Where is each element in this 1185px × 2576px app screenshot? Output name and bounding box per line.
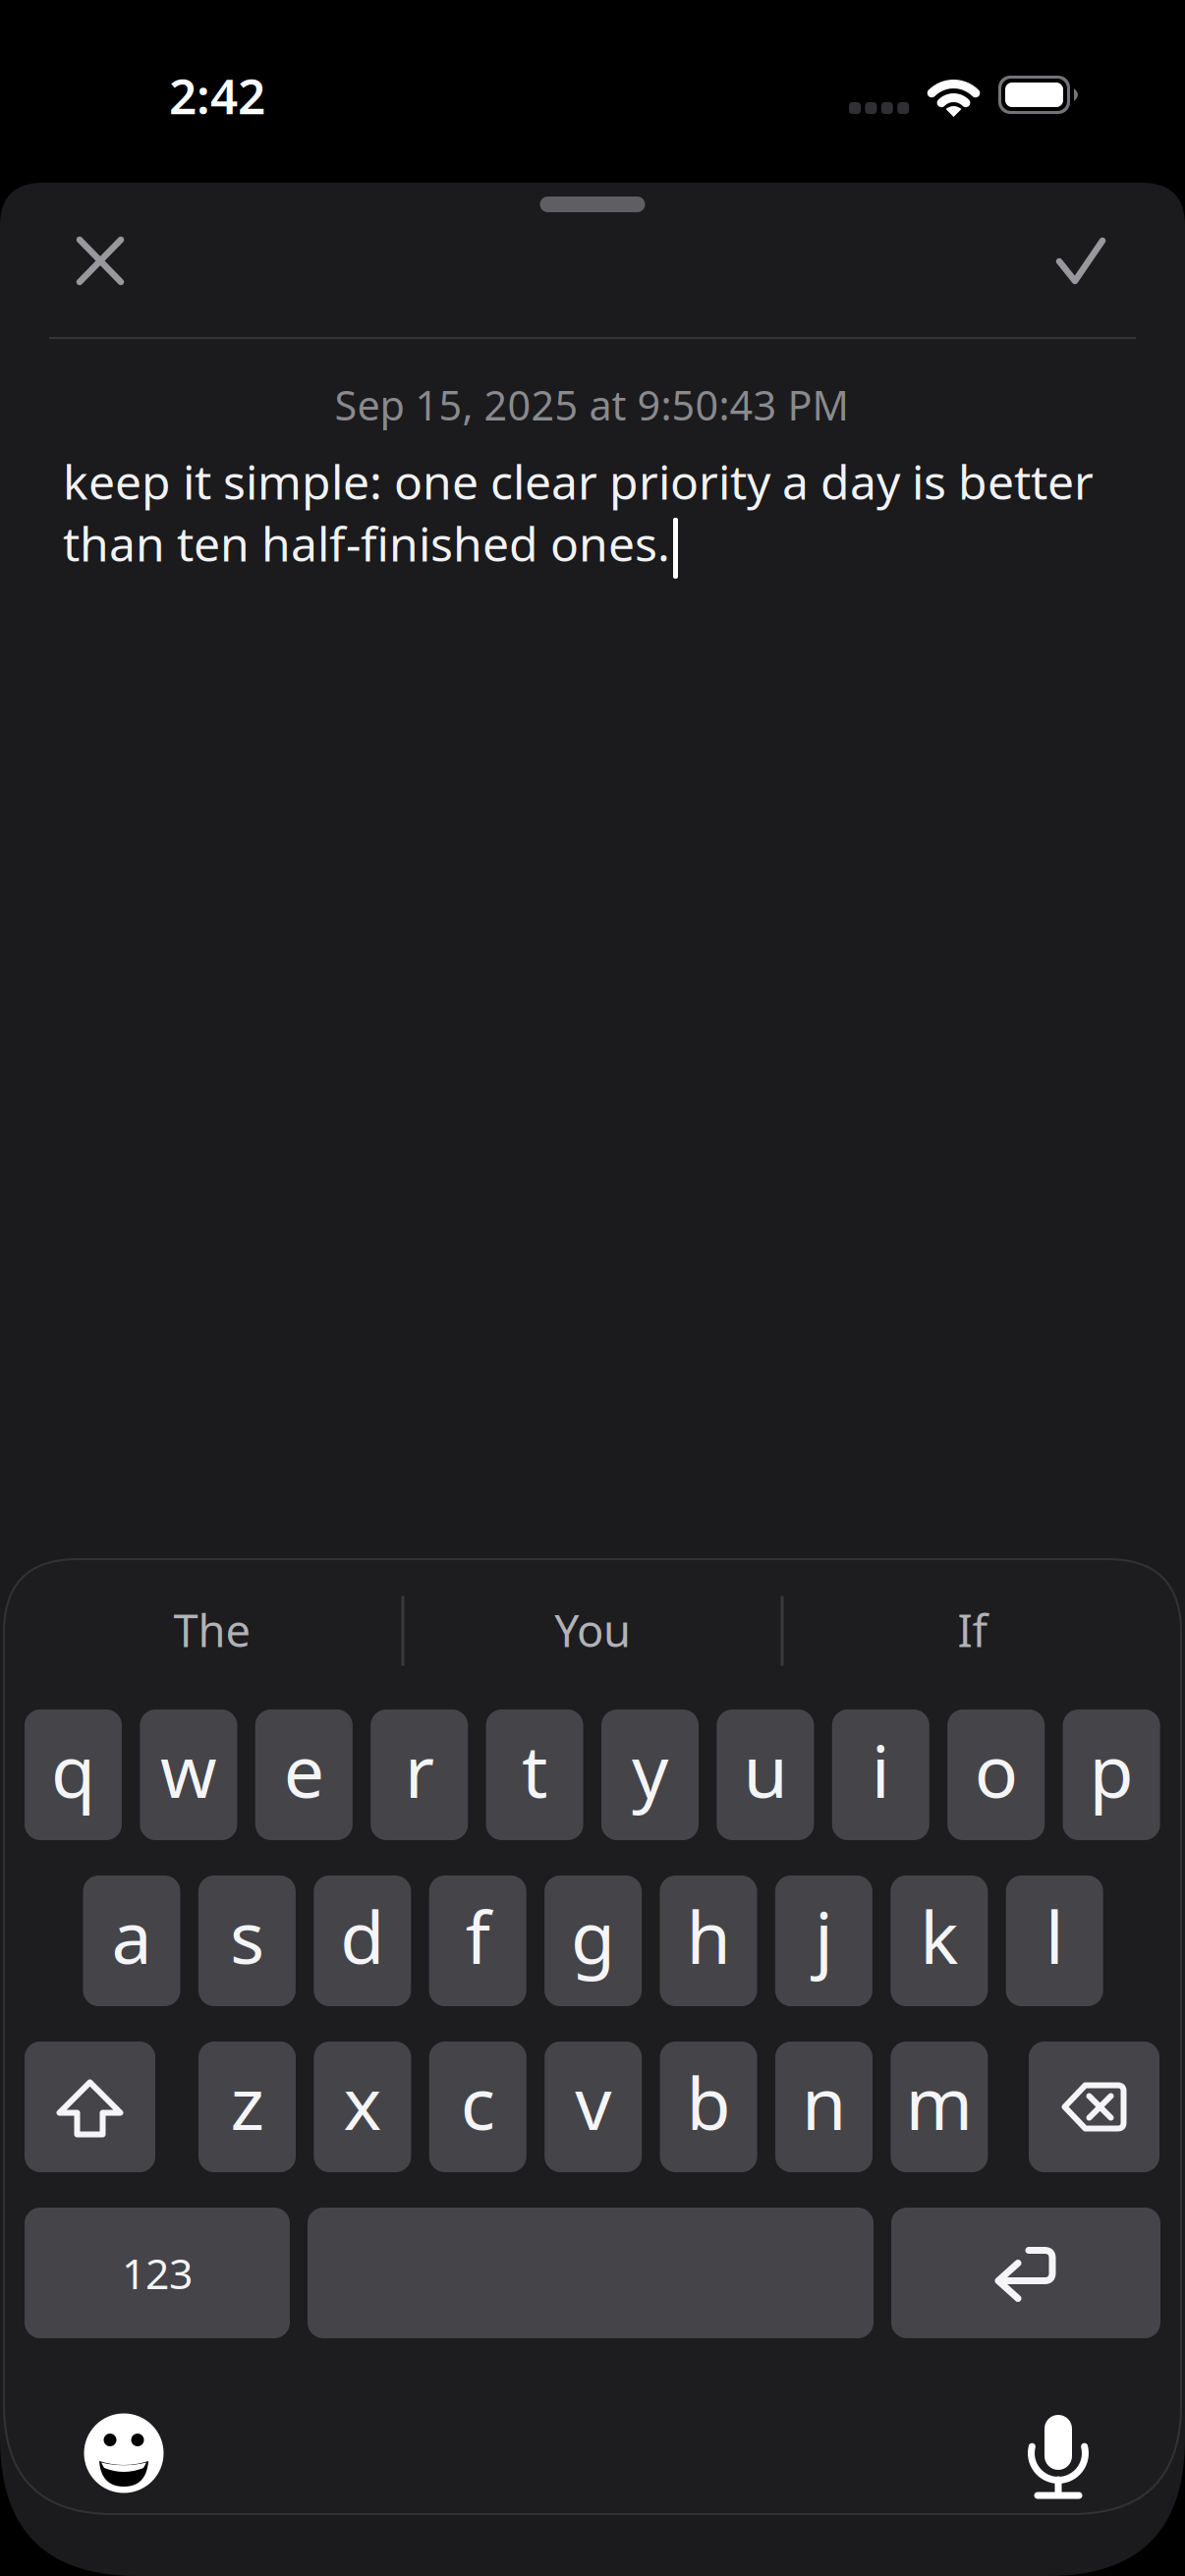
button[interactable]: Emoji — [75, 2404, 173, 2502]
button[interactable]: w — [140, 1709, 237, 1840]
button[interactable]: v — [545, 2042, 642, 2172]
staticText: s — [230, 1888, 264, 1984]
button[interactable]: You — [416, 1581, 769, 1679]
staticText: keep it simple: one clear priority a day… — [63, 450, 1094, 513]
staticText: j — [814, 1888, 833, 1984]
button[interactable]: e — [255, 1709, 353, 1840]
staticText: You — [554, 1600, 631, 1659]
staticText: e — [284, 1722, 324, 1818]
button[interactable]: The — [35, 1581, 389, 1679]
button[interactable]: p — [1063, 1709, 1160, 1840]
button[interactable]: y — [601, 1709, 699, 1840]
staticText: i — [871, 1722, 890, 1818]
staticText: 2:42 — [169, 63, 265, 127]
staticText: f — [465, 1888, 490, 1984]
button[interactable]: If — [796, 1581, 1150, 1679]
button[interactable]: u — [717, 1709, 814, 1840]
staticText: c — [461, 2054, 495, 2150]
staticText: n — [802, 2054, 846, 2150]
staticText: 123 — [122, 2245, 193, 2301]
button[interactable]: f — [429, 1876, 526, 2006]
staticText: m — [905, 2054, 973, 2150]
staticText: k — [920, 1888, 958, 1984]
button[interactable]: Delete — [1029, 2042, 1159, 2172]
staticText: a — [112, 1888, 152, 1984]
button[interactable]: z — [198, 2042, 296, 2172]
button[interactable]: o — [947, 1709, 1045, 1840]
staticText: h — [686, 1888, 731, 1984]
button[interactable]: t — [486, 1709, 583, 1840]
staticText: b — [686, 2054, 731, 2150]
button[interactable]: l — [1006, 1876, 1103, 2006]
button[interactable]: k — [891, 1876, 988, 2006]
button[interactable]: b — [660, 2042, 757, 2172]
button[interactable]: c — [429, 2042, 526, 2172]
staticText: If — [958, 1600, 988, 1659]
staticText: o — [974, 1722, 1018, 1818]
button[interactable]: j — [775, 1876, 872, 2006]
button[interactable]: n — [775, 2042, 873, 2172]
button[interactable]: q — [25, 1709, 122, 1840]
button[interactable]: x — [314, 2042, 411, 2172]
button[interactable]: i — [832, 1709, 929, 1840]
button[interactable]: d — [314, 1876, 411, 2006]
button[interactable]: g — [544, 1876, 642, 2006]
button[interactable]: Shift — [25, 2042, 155, 2172]
staticText: w — [160, 1722, 217, 1818]
staticText: p — [1089, 1722, 1134, 1818]
button[interactable]: Save — [1027, 207, 1135, 315]
staticText: The — [173, 1600, 251, 1659]
button[interactable]: Return — [891, 2208, 1160, 2338]
button[interactable]: Numbers — [25, 2208, 290, 2338]
staticText: y — [632, 1722, 668, 1818]
staticText: g — [571, 1888, 615, 1984]
staticText: z — [230, 2054, 264, 2150]
staticText: x — [343, 2054, 382, 2150]
button[interactable]: a — [83, 1876, 180, 2006]
staticText: d — [340, 1888, 384, 1984]
staticText: t — [522, 1722, 547, 1818]
staticText: r — [405, 1722, 434, 1818]
staticText: q — [51, 1722, 95, 1818]
staticText: u — [743, 1722, 787, 1818]
button[interactable]: Dictation — [1009, 2402, 1107, 2500]
staticText: v — [575, 2054, 611, 2150]
staticText: than ten half-finished ones. — [63, 512, 670, 575]
button[interactable]: r — [371, 1709, 468, 1840]
button[interactable]: h — [660, 1876, 757, 2006]
button[interactable]: m — [891, 2042, 988, 2172]
staticText: l — [1045, 1888, 1064, 1984]
staticText: Sep 15, 2025 at 9:50:43 PM — [335, 378, 848, 432]
button[interactable]: Close — [46, 207, 154, 315]
button[interactable]: s — [198, 1876, 296, 2006]
